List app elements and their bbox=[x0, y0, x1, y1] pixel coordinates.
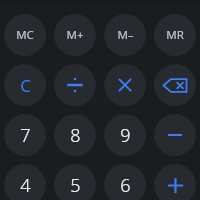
staticText: M– bbox=[117, 27, 134, 43]
button[interactable]: 6 bbox=[104, 164, 146, 200]
button[interactable]: Multiply bbox=[104, 64, 146, 106]
button[interactable]: C bbox=[4, 64, 46, 106]
button[interactable]: M+ bbox=[54, 14, 96, 56]
button[interactable]: 7 bbox=[4, 114, 46, 156]
button[interactable]: Plus bbox=[154, 164, 196, 200]
button[interactable]: 4 bbox=[4, 164, 46, 200]
button[interactable]: 8 bbox=[54, 114, 96, 156]
button[interactable]: 5 bbox=[54, 164, 96, 200]
button[interactable]: 9 bbox=[104, 114, 146, 156]
staticText: MC bbox=[16, 27, 34, 43]
staticText: 7 bbox=[20, 123, 31, 148]
staticText: M+ bbox=[66, 27, 84, 43]
staticText: MR bbox=[166, 27, 184, 43]
button[interactable]: Backspace bbox=[154, 64, 196, 106]
button[interactable]: Divide bbox=[54, 64, 96, 106]
button[interactable]: MC bbox=[4, 14, 46, 56]
staticText: 5 bbox=[70, 173, 81, 198]
staticText: 8 bbox=[70, 123, 81, 148]
staticText: 6 bbox=[120, 173, 131, 198]
button[interactable]: M– bbox=[104, 14, 146, 56]
button[interactable]: MR bbox=[154, 14, 196, 56]
button[interactable]: Minus bbox=[154, 114, 196, 156]
staticText: 9 bbox=[120, 123, 131, 148]
staticText: 4 bbox=[20, 173, 31, 198]
staticText: C bbox=[20, 74, 31, 97]
